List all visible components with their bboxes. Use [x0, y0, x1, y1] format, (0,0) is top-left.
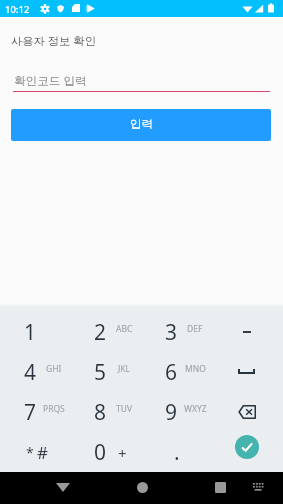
button[interactable]: 1 [0, 312, 70, 352]
staticText: 2 [94, 318, 107, 347]
button[interactable]: 확인 [235, 435, 259, 459]
button[interactable]: 5 [70, 352, 141, 392]
staticText: 확인코드 입력 [14, 73, 87, 89]
button[interactable]: 4 [0, 352, 70, 392]
staticText: + [118, 443, 127, 463]
staticText: 9 [165, 398, 178, 427]
button[interactable]: 0 [70, 432, 141, 472]
button[interactable]: 3 [141, 312, 212, 352]
staticText: DEF [187, 323, 203, 335]
staticText: MNO [185, 363, 206, 375]
button[interactable]: 9 [141, 392, 212, 432]
button[interactable]: * [0, 432, 70, 472]
button[interactable]: 확인 [212, 432, 283, 472]
button[interactable]: 2 [70, 312, 141, 352]
button[interactable]: 입력 [11, 109, 271, 141]
staticText: JKL [118, 363, 131, 375]
button[interactable] [212, 392, 283, 432]
staticText: 사용자 정보 확인 [11, 33, 96, 48]
staticText: ABC [116, 323, 133, 335]
button[interactable]: 7 [0, 392, 70, 432]
staticText: 10:12 [5, 3, 30, 16]
staticText: 5 [94, 358, 107, 387]
staticText: 6 [165, 358, 178, 387]
button[interactable]: 키보드 전환 [241, 472, 277, 504]
staticText: . [174, 438, 180, 467]
staticText: 0 [94, 438, 107, 467]
staticText: 3 [165, 318, 178, 347]
staticText: GHI [46, 363, 62, 375]
staticText: TUV [116, 403, 133, 415]
staticText: WXYZ [184, 403, 207, 415]
staticText: 7 [24, 398, 37, 427]
staticText: 입력 [130, 117, 153, 131]
button[interactable]: 뒤로 [39, 472, 87, 504]
button[interactable] [212, 352, 283, 392]
button[interactable]: 6 [141, 352, 212, 392]
button[interactable]: 홈 [118, 472, 166, 504]
staticText: 4 [24, 358, 37, 387]
staticText: # [37, 441, 48, 464]
button[interactable]: . [141, 432, 212, 472]
staticText: PRQS [43, 403, 65, 415]
staticText: 8 [94, 398, 107, 427]
button[interactable] [212, 312, 283, 352]
staticText: * [26, 443, 34, 462]
button[interactable]: 8 [70, 392, 141, 432]
button[interactable]: 최근 앱 [196, 472, 244, 504]
staticText: 1 [24, 318, 37, 347]
